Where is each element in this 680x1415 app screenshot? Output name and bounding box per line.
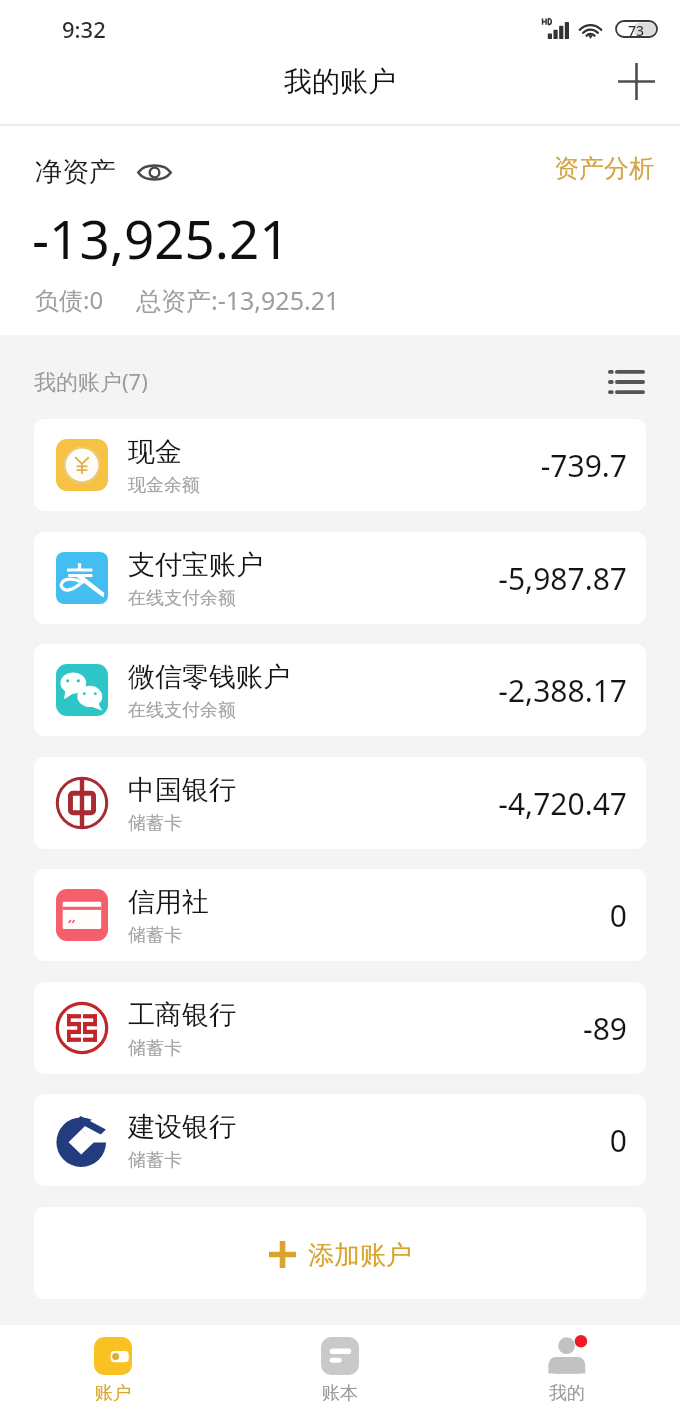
button[interactable]: 工商银行 xyxy=(34,982,646,1074)
button[interactable]: 我的 xyxy=(453,1325,680,1415)
staticText: -5,987.87 xyxy=(498,558,627,599)
staticText: 储蓄卡 xyxy=(128,1037,182,1060)
staticText: 总资产:-13,925.21 xyxy=(136,283,340,317)
staticText: -4,720.47 xyxy=(498,783,627,824)
staticText: -89 xyxy=(583,1008,627,1049)
button[interactable]: 账本 xyxy=(226,1325,453,1415)
staticText: 现金余额 xyxy=(128,474,200,497)
button[interactable]: 账户 xyxy=(0,1325,226,1415)
staticText: 信用社 xyxy=(128,885,209,919)
button[interactable]: Add account xyxy=(607,52,665,110)
button[interactable]: 微信零钱账户 xyxy=(34,644,646,736)
button[interactable]: 添加账户 xyxy=(34,1207,646,1299)
staticText: 0 xyxy=(609,895,627,936)
staticText: 在线支付余额 xyxy=(128,699,236,722)
staticText: 储蓄卡 xyxy=(128,924,182,947)
staticText: -13,925.21 xyxy=(32,202,290,274)
button[interactable]: 现金 xyxy=(34,419,646,511)
staticText: 储蓄卡 xyxy=(128,1149,182,1172)
button[interactable]: 资产分析 xyxy=(542,141,666,195)
staticText: 9:32 xyxy=(62,14,106,44)
staticText: 0 xyxy=(609,1120,627,1161)
staticText: 73 xyxy=(628,21,645,37)
staticText: 工商银行 xyxy=(128,998,236,1032)
staticText: 在线支付余额 xyxy=(128,587,236,610)
staticText: 账本 xyxy=(322,1382,358,1405)
staticText: 储蓄卡 xyxy=(128,812,182,835)
staticText: 我的 xyxy=(549,1382,585,1405)
staticText: 添加账户 xyxy=(308,1239,412,1272)
button[interactable]: Toggle amount visibility xyxy=(133,156,175,188)
button[interactable]: 信用社 xyxy=(34,869,646,961)
staticText: 微信零钱账户 xyxy=(128,660,290,694)
staticText: 我的账户(7) xyxy=(34,366,148,396)
button[interactable]: 建设银行 xyxy=(34,1094,646,1186)
staticText: 中国银行 xyxy=(128,773,236,807)
staticText: 净资产 xyxy=(35,155,116,189)
staticText: 支付宝账户 xyxy=(128,548,263,582)
button[interactable]: 中国银行 xyxy=(34,757,646,849)
staticText: -2,388.17 xyxy=(498,670,627,711)
button[interactable]: Change list layout xyxy=(598,358,655,406)
staticText: 我的账户 xyxy=(284,64,396,99)
staticText: 资产分析 xyxy=(554,153,654,184)
staticText: 账户 xyxy=(95,1382,131,1405)
staticText: 现金 xyxy=(128,435,182,469)
staticText: -739.7 xyxy=(540,445,627,486)
staticText: 负债:0 xyxy=(35,283,104,316)
button[interactable]: 支付宝账户 xyxy=(34,532,646,624)
staticText: 建设银行 xyxy=(128,1110,236,1144)
